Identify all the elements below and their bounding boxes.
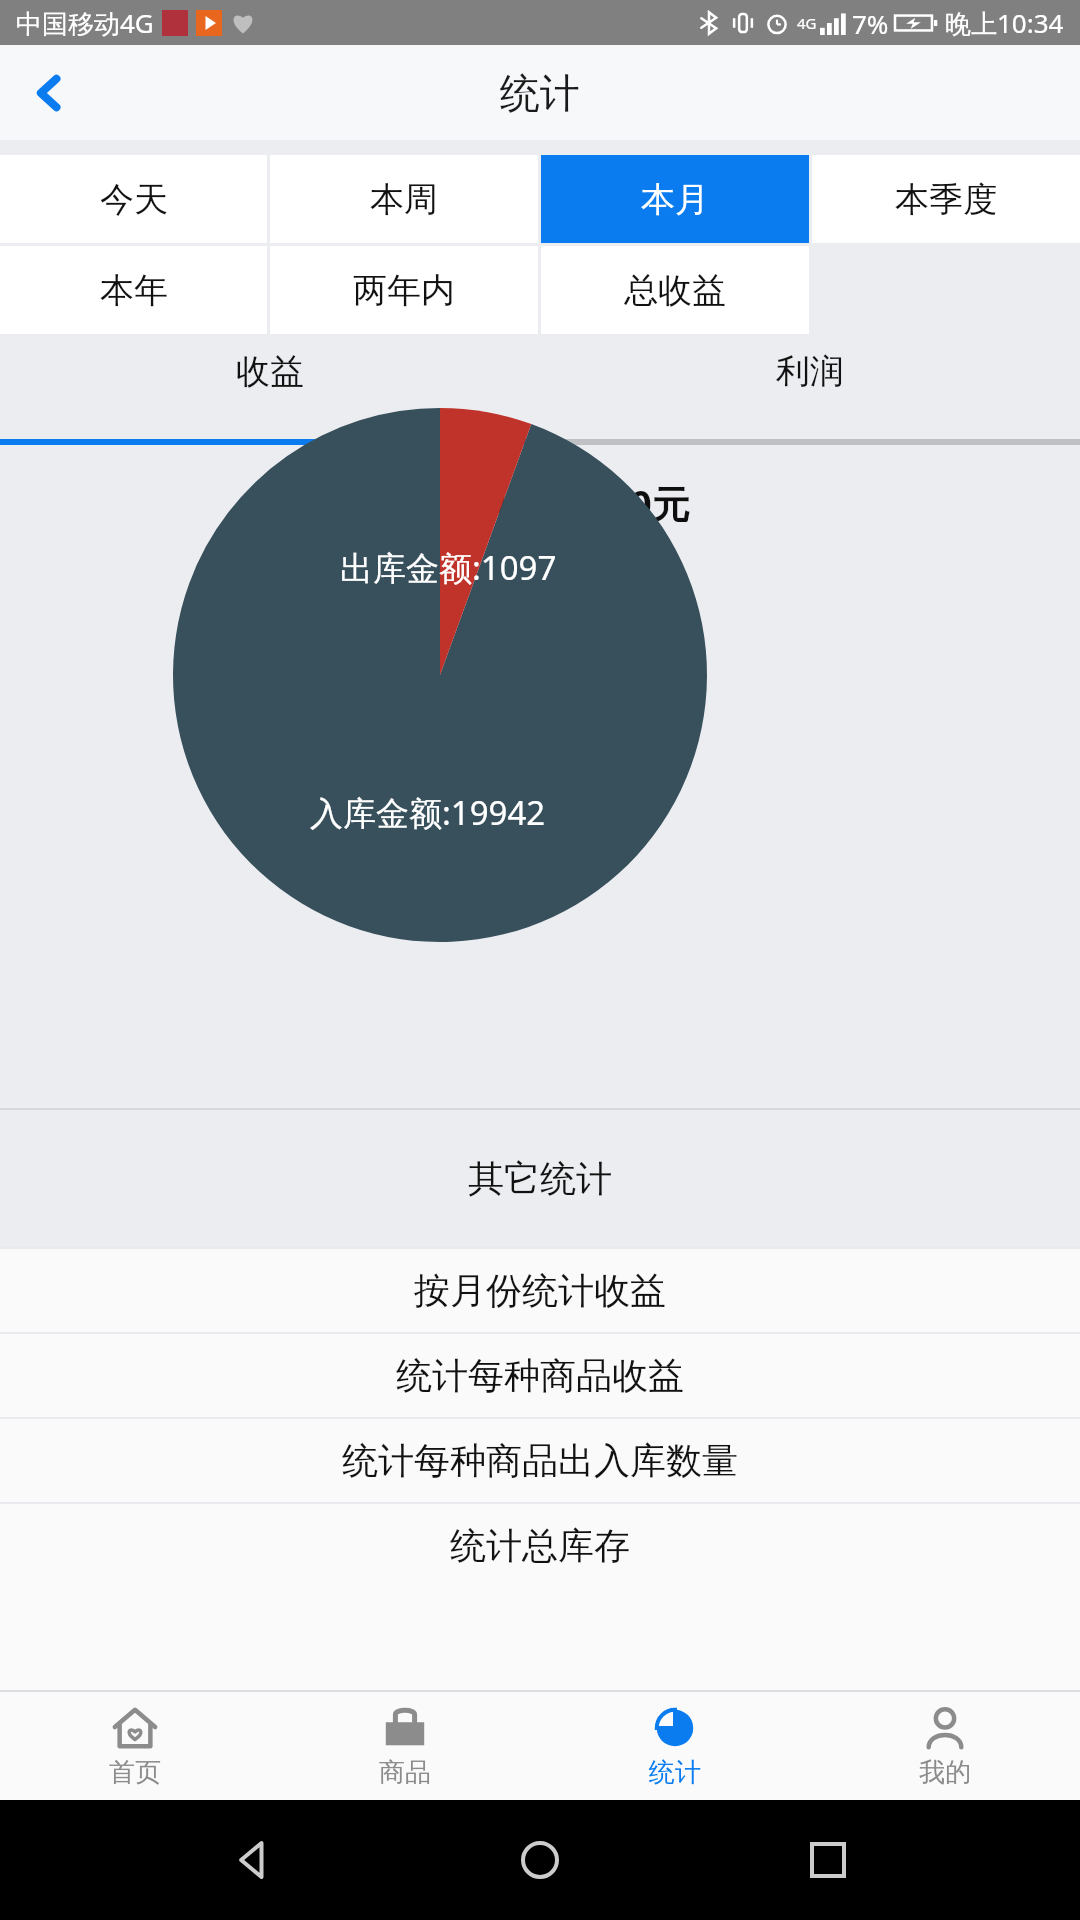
button[interactable]: 首页 <box>0 1692 270 1800</box>
button[interactable]: 两年内 <box>270 246 538 334</box>
staticText: 出库金额:1097 <box>340 545 557 590</box>
staticText: 晚上10:34 <box>945 5 1064 41</box>
staticText: 首页 <box>109 1756 161 1789</box>
button[interactable]: 其它统计 <box>0 1110 1080 1247</box>
button[interactable]: 统计每种商品出入库数量 <box>0 1419 1080 1502</box>
button[interactable]: 收益 <box>0 336 540 439</box>
staticText: 入库金额:19942 <box>310 790 546 835</box>
button[interactable]: 返回 <box>218 1825 288 1895</box>
staticText: 我的 <box>919 1756 971 1789</box>
button[interactable]: 本月 <box>541 155 809 243</box>
button[interactable]: 商品 <box>270 1692 540 1800</box>
staticText: 两年内 <box>353 269 455 312</box>
staticText: 收益 <box>236 350 304 393</box>
staticText: 其它统计 <box>468 1156 612 1201</box>
staticText: 本季度 <box>895 178 997 221</box>
button[interactable]: 利润 <box>540 336 1080 439</box>
staticText: 统计总库存 <box>450 1523 630 1568</box>
staticText: 统计每种商品收益 <box>396 1353 684 1398</box>
staticText: 本年 <box>100 269 168 312</box>
button[interactable]: 统计总库存 <box>0 1504 1080 1587</box>
staticText: 统计 <box>500 68 580 118</box>
button[interactable]: 本年 <box>0 246 267 334</box>
button[interactable]: 我的 <box>810 1692 1080 1800</box>
staticText: 商品 <box>379 1756 431 1789</box>
staticText: 本周 <box>370 178 438 221</box>
staticText: 利润 <box>776 350 844 393</box>
button[interactable]: 本季度 <box>812 155 1080 243</box>
staticText: 7% <box>852 6 889 41</box>
staticText: 中国移动4G <box>16 5 154 41</box>
button[interactable]: 统计每种商品收益 <box>0 1334 1080 1417</box>
button[interactable]: 今天 <box>0 155 267 243</box>
button[interactable]: 最近任务 <box>793 1825 863 1895</box>
staticText: 今天 <box>100 178 168 221</box>
button[interactable]: 本周 <box>270 155 538 243</box>
staticText: 本月 <box>641 178 709 221</box>
staticText: 总收益 <box>624 269 726 312</box>
staticText: 统计 <box>649 1756 701 1789</box>
button[interactable]: 按月份统计收益 <box>0 1249 1080 1332</box>
button[interactable]: 统计 <box>540 1692 810 1800</box>
button[interactable]: 返回 <box>14 58 84 128</box>
button[interactable]: 主页 <box>505 1825 575 1895</box>
staticText: 收益:-18845.00元 <box>390 477 690 529</box>
staticText: 统计每种商品出入库数量 <box>342 1438 738 1483</box>
button[interactable]: 总收益 <box>541 246 809 334</box>
staticText: 4G <box>797 13 817 33</box>
staticText: 按月份统计收益 <box>414 1268 666 1313</box>
